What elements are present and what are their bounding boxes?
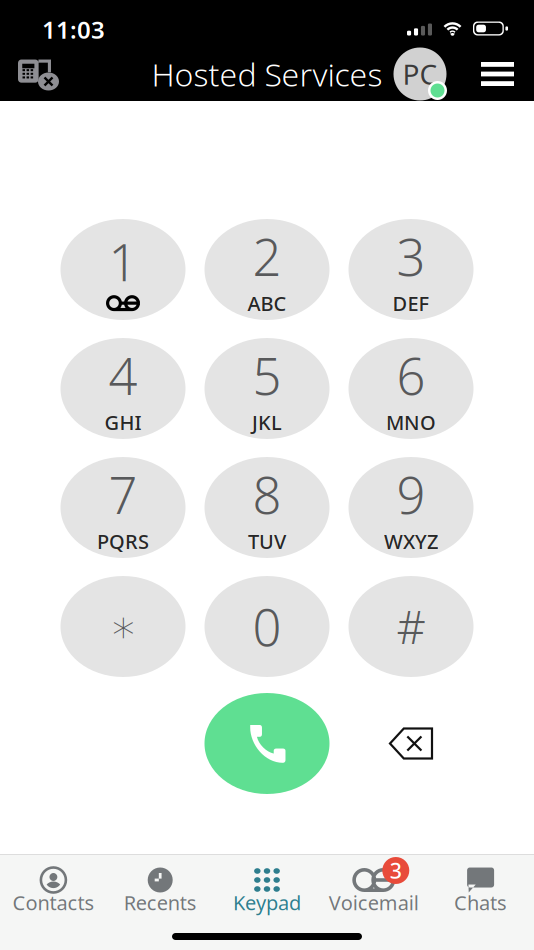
button[interactable]: Menu: [475, 47, 520, 101]
button[interactable]: 0: [204, 576, 329, 677]
button[interactable]: 2: [204, 219, 329, 320]
button[interactable]: Recents: [107, 867, 214, 912]
staticText: 4: [108, 342, 137, 409]
staticText: 6: [396, 342, 425, 409]
button[interactable]: Call: [204, 693, 329, 794]
button[interactable]: Profile PC, available: [393, 47, 447, 100]
staticText: GHI: [104, 409, 141, 435]
staticText: DEF: [392, 290, 429, 316]
staticText: 5: [252, 342, 281, 409]
staticText: #: [396, 596, 425, 657]
button[interactable]: Chats: [427, 867, 534, 912]
staticText: WXYZ: [384, 528, 438, 554]
button[interactable]: 4: [60, 338, 185, 439]
staticText: MNO: [386, 409, 436, 435]
staticText: Recents: [124, 889, 197, 916]
button[interactable]: #: [348, 576, 473, 677]
button[interactable]: Keypad: [214, 867, 320, 912]
staticText: Hosted Services: [151, 53, 382, 95]
staticText: ∗: [109, 601, 137, 652]
button[interactable]: 9: [348, 457, 473, 558]
button[interactable]: 3: [320, 867, 427, 912]
button[interactable]: Delete: [348, 693, 473, 794]
staticText: Chats: [454, 889, 507, 916]
staticText: 7: [108, 461, 137, 528]
button[interactable]: 5: [204, 338, 329, 439]
staticText: Keypad: [233, 889, 301, 916]
staticText: 1: [108, 228, 137, 295]
staticText: 3: [396, 223, 425, 290]
staticText: PQRS: [97, 528, 149, 554]
button[interactable]: 6: [348, 338, 473, 439]
staticText: 11:03: [42, 14, 105, 45]
staticText: Contacts: [12, 889, 94, 916]
staticText: 8: [252, 461, 281, 528]
staticText: PC: [402, 55, 437, 93]
button[interactable]: 8: [204, 457, 329, 558]
button[interactable]: Turn off deskphone: [8, 47, 69, 101]
button[interactable]: ∗: [60, 576, 185, 677]
button[interactable]: Contacts: [0, 867, 107, 912]
staticText: 3: [390, 856, 402, 885]
staticText: 2: [252, 223, 281, 290]
staticText: 9: [396, 461, 425, 528]
staticText: TUV: [248, 528, 286, 554]
staticText: JKL: [252, 409, 282, 435]
staticText: Voicemail: [329, 889, 419, 916]
staticText: ABC: [247, 290, 286, 316]
button[interactable]: 3: [348, 219, 473, 320]
button[interactable]: 7: [60, 457, 185, 558]
staticText: 0: [252, 593, 281, 660]
button[interactable]: 1: [60, 219, 185, 320]
